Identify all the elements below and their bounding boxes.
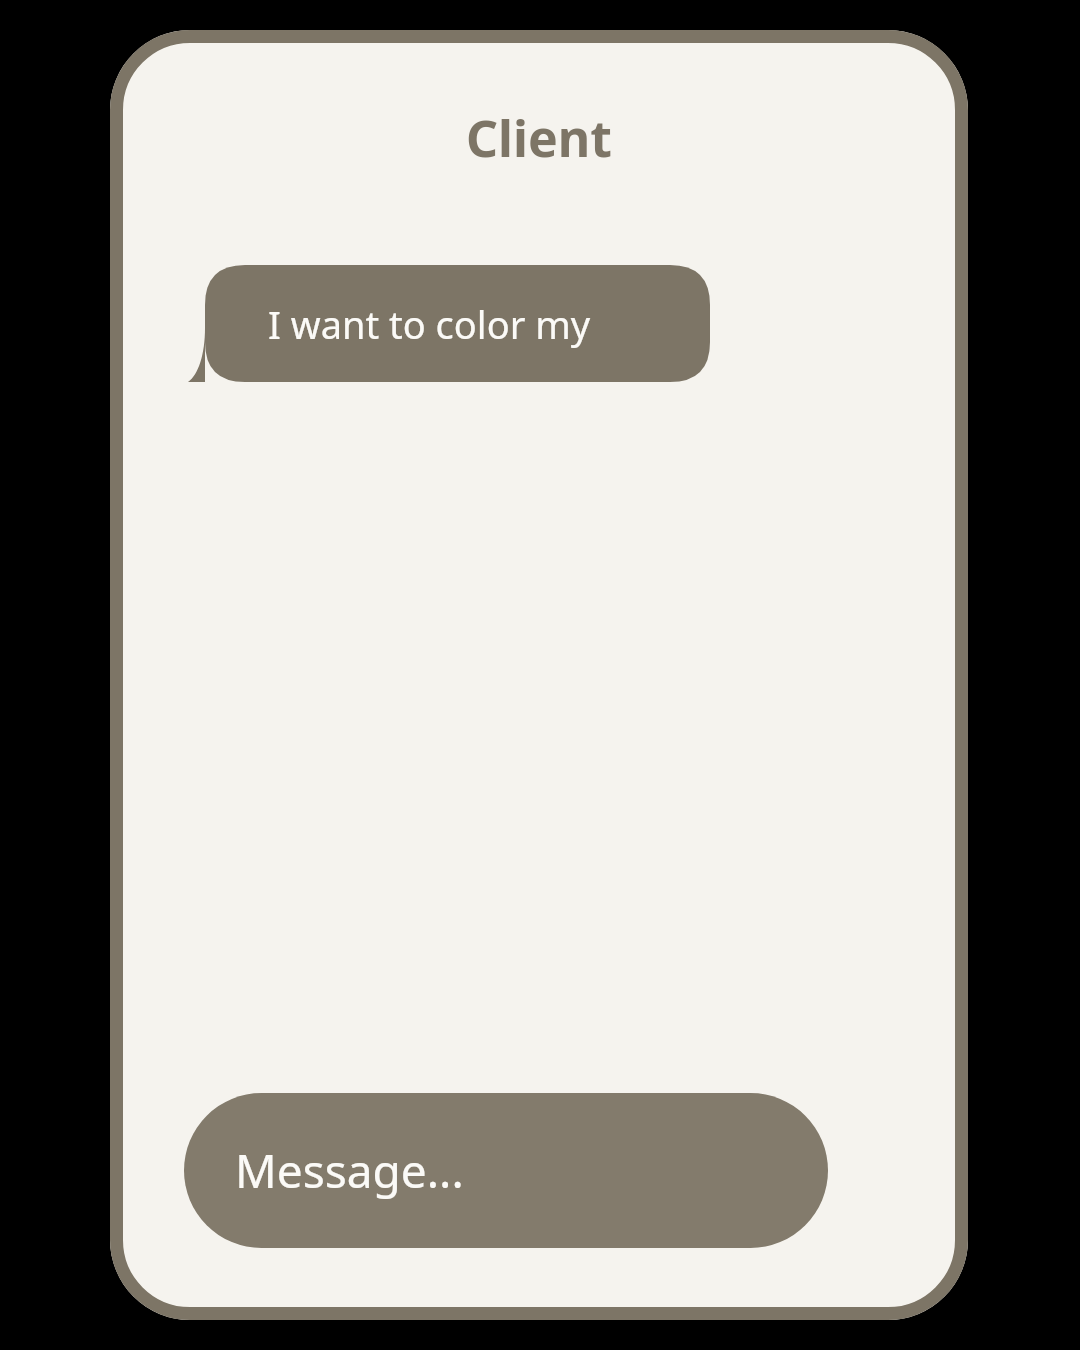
staticText: Message... bbox=[235, 1139, 464, 1202]
staticText: Client bbox=[466, 104, 612, 172]
staticText: I want to color my hair bbox=[268, 298, 668, 350]
button[interactable]: I want to color my hair bbox=[188, 265, 710, 382]
button[interactable]: Message input bbox=[184, 1093, 828, 1248]
